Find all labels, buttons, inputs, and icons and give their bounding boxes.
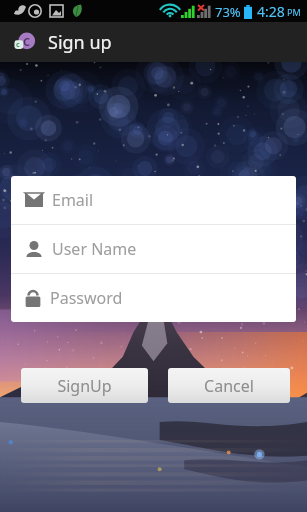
staticText: Cancel	[204, 375, 254, 397]
button[interactable]: Cancel	[168, 368, 290, 403]
button[interactable]: SignUp	[21, 368, 148, 403]
staticText: c	[16, 40, 20, 50]
staticText: PM	[287, 6, 301, 18]
button[interactable]: User Name	[11, 225, 296, 273]
staticText: Sign up	[48, 30, 112, 55]
staticText: C	[23, 34, 31, 49]
button[interactable]: Email	[11, 176, 296, 224]
staticText: Email	[52, 189, 94, 211]
staticText: Password	[50, 287, 123, 309]
staticText: SignUp	[57, 375, 112, 397]
staticText: 73%	[215, 3, 241, 21]
other: App logo	[14, 31, 36, 53]
staticText: User Name	[52, 238, 137, 260]
button[interactable]: Password	[11, 274, 296, 322]
staticText: 4:28	[257, 2, 285, 21]
